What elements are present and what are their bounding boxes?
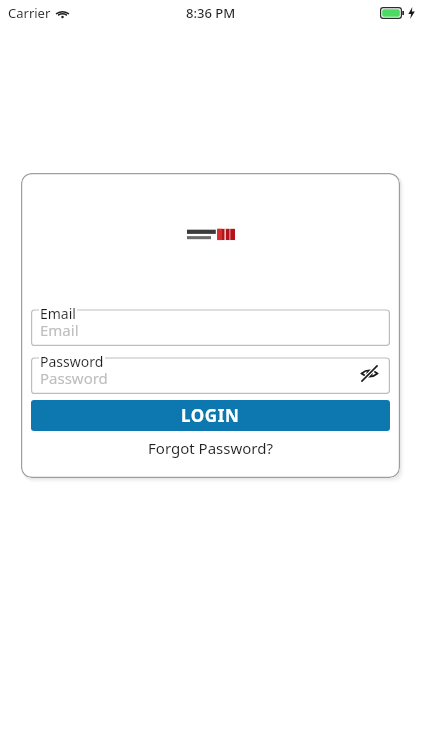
button[interactable]: Forgot Password? bbox=[31, 436, 390, 460]
staticText: Email bbox=[40, 304, 76, 323]
staticText: Email bbox=[40, 320, 79, 340]
staticText: Password bbox=[40, 368, 108, 388]
staticText: Forgot Password? bbox=[148, 438, 273, 458]
staticText: Carrier bbox=[8, 4, 51, 22]
button[interactable]: Password bbox=[31, 352, 390, 394]
staticText: LOGIN bbox=[181, 404, 240, 427]
button[interactable]: LOGIN bbox=[31, 400, 390, 431]
button[interactable]: Show password bbox=[356, 360, 382, 386]
staticText: 8:36 PM bbox=[186, 4, 236, 22]
staticText: Password bbox=[40, 352, 104, 371]
button[interactable]: Email bbox=[31, 304, 390, 346]
